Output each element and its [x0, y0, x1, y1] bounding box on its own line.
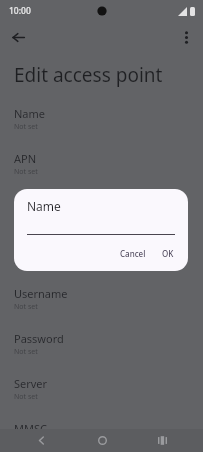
- button[interactable]: Password: [0, 327, 203, 372]
- staticText: Name: [27, 198, 61, 214]
- button[interactable]: More options: [172, 23, 200, 51]
- staticText: Not set: [14, 122, 38, 132]
- staticText: Password: [14, 331, 64, 346]
- button[interactable]: Cancel: [114, 245, 152, 262]
- staticText: Server: [14, 376, 48, 391]
- staticText: Not set: [14, 167, 38, 177]
- staticText: Not set: [14, 347, 38, 357]
- staticText: Not set: [14, 392, 38, 402]
- button[interactable]: Port: [0, 237, 203, 282]
- button[interactable]: Back: [21, 429, 61, 452]
- button[interactable]: Name: [0, 102, 203, 147]
- button[interactable]: Back: [4, 23, 32, 51]
- staticText: Edit access point: [14, 62, 163, 88]
- staticText: OK: [162, 248, 174, 259]
- button[interactable]: Username: [0, 282, 203, 327]
- staticText: Not set: [14, 257, 38, 267]
- button[interactable]: Recent apps: [142, 429, 182, 452]
- staticText: Name: [14, 106, 46, 121]
- staticText: Not set: [14, 302, 38, 312]
- button[interactable]: Home: [82, 429, 122, 452]
- button[interactable]: OK: [156, 245, 180, 262]
- staticText: Proxy: [14, 196, 43, 211]
- staticText: APN: [14, 151, 37, 166]
- button[interactable]: APN: [0, 147, 203, 192]
- staticText: MMSC: [14, 421, 47, 436]
- staticText: Cancel: [120, 248, 146, 259]
- button[interactable]: Proxy: [0, 192, 203, 237]
- button[interactable]: Server: [0, 372, 203, 417]
- staticText: Username: [14, 286, 68, 301]
- staticText: 10:00: [9, 5, 31, 17]
- button[interactable]: MMSC: [0, 417, 203, 452]
